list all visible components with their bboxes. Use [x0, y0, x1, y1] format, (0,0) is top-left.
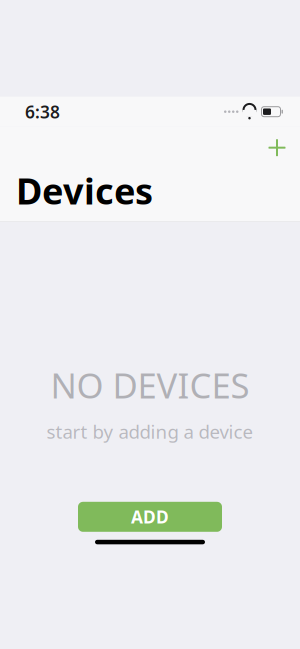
button[interactable]: Add device: [260, 131, 294, 165]
staticText: 6:38: [25, 100, 60, 123]
staticText: NO DEVICES: [50, 362, 249, 408]
staticText: Devices: [16, 167, 153, 214]
staticText: start by adding a device: [46, 419, 253, 444]
staticText: ADD: [131, 505, 169, 528]
button[interactable]: ADD: [78, 502, 222, 532]
